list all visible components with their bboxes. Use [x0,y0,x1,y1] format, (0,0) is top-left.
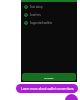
button[interactable]: Connect [22,73,76,81]
button[interactable]: Learn more about wallet connections [16,84,78,93]
staticText: Connect [44,76,54,79]
staticText: Supported wallets [30,21,53,25]
button[interactable]: Fast setup [21,3,77,11]
staticText: Fast setup [30,5,43,9]
staticText: Learn more about wallet connections [21,87,74,91]
button[interactable]: Tap indicator [65,94,78,100]
button[interactable]: Low fees [21,11,77,19]
staticText: Low fees [30,13,41,17]
button[interactable]: Supported wallets [21,19,77,27]
